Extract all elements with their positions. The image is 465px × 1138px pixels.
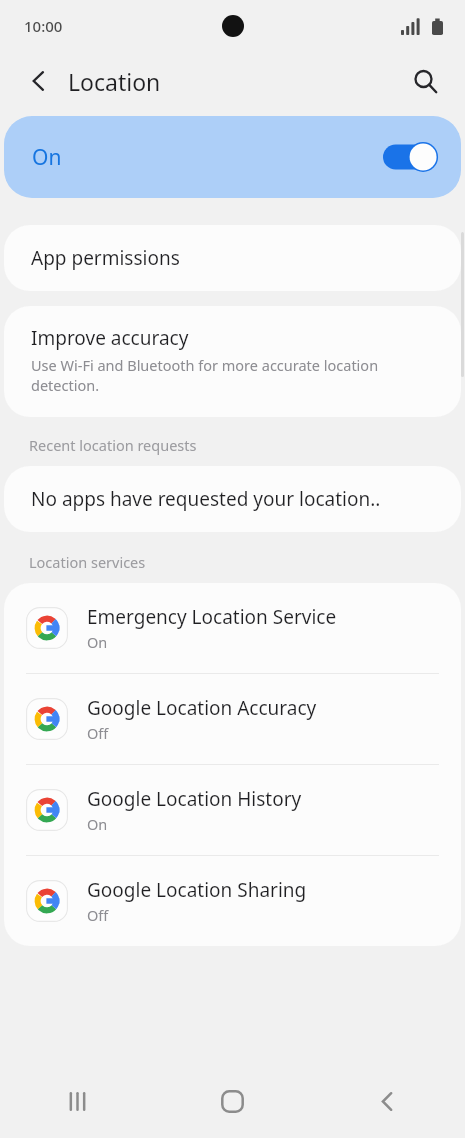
button[interactable]: Back	[310, 1064, 465, 1138]
staticText: Google Location Accuracy	[87, 695, 317, 721]
staticText: Location	[68, 66, 161, 97]
staticText: Location services	[29, 552, 146, 572]
staticText: Off	[87, 905, 109, 925]
staticText: App permissions	[31, 245, 180, 271]
button[interactable]: On	[4, 116, 461, 198]
button[interactable]: No apps have requested your location..	[4, 466, 461, 532]
button[interactable]: Emergency Location Service	[4, 583, 461, 673]
button[interactable]: Google Location Accuracy	[4, 674, 461, 764]
staticText: Use Wi-Fi and Bluetooth for more accurat…	[31, 355, 439, 395]
staticText: On	[87, 814, 108, 834]
button[interactable]: Improve accuracy	[4, 306, 461, 417]
button[interactable]: Recent apps	[0, 1064, 155, 1138]
button[interactable]: Google Location Sharing	[4, 856, 461, 946]
button[interactable]: Google Location History	[4, 765, 461, 855]
button[interactable]: Home	[155, 1064, 310, 1138]
staticText: Emergency Location Service	[87, 604, 337, 630]
button[interactable]: Navigate up	[16, 58, 62, 104]
staticText: Google Location Sharing	[87, 877, 307, 903]
staticText: Off	[87, 723, 109, 743]
staticText: On	[87, 632, 108, 652]
button[interactable]: App permissions	[4, 225, 461, 291]
staticText: Improve accuracy	[31, 325, 189, 351]
staticText: No apps have requested your location..	[31, 486, 381, 512]
staticText: On	[32, 143, 62, 172]
staticText: Google Location History	[87, 786, 302, 812]
staticText: 10:00	[24, 16, 63, 36]
button[interactable]: Search	[401, 57, 449, 105]
staticText: Recent location requests	[29, 435, 197, 455]
